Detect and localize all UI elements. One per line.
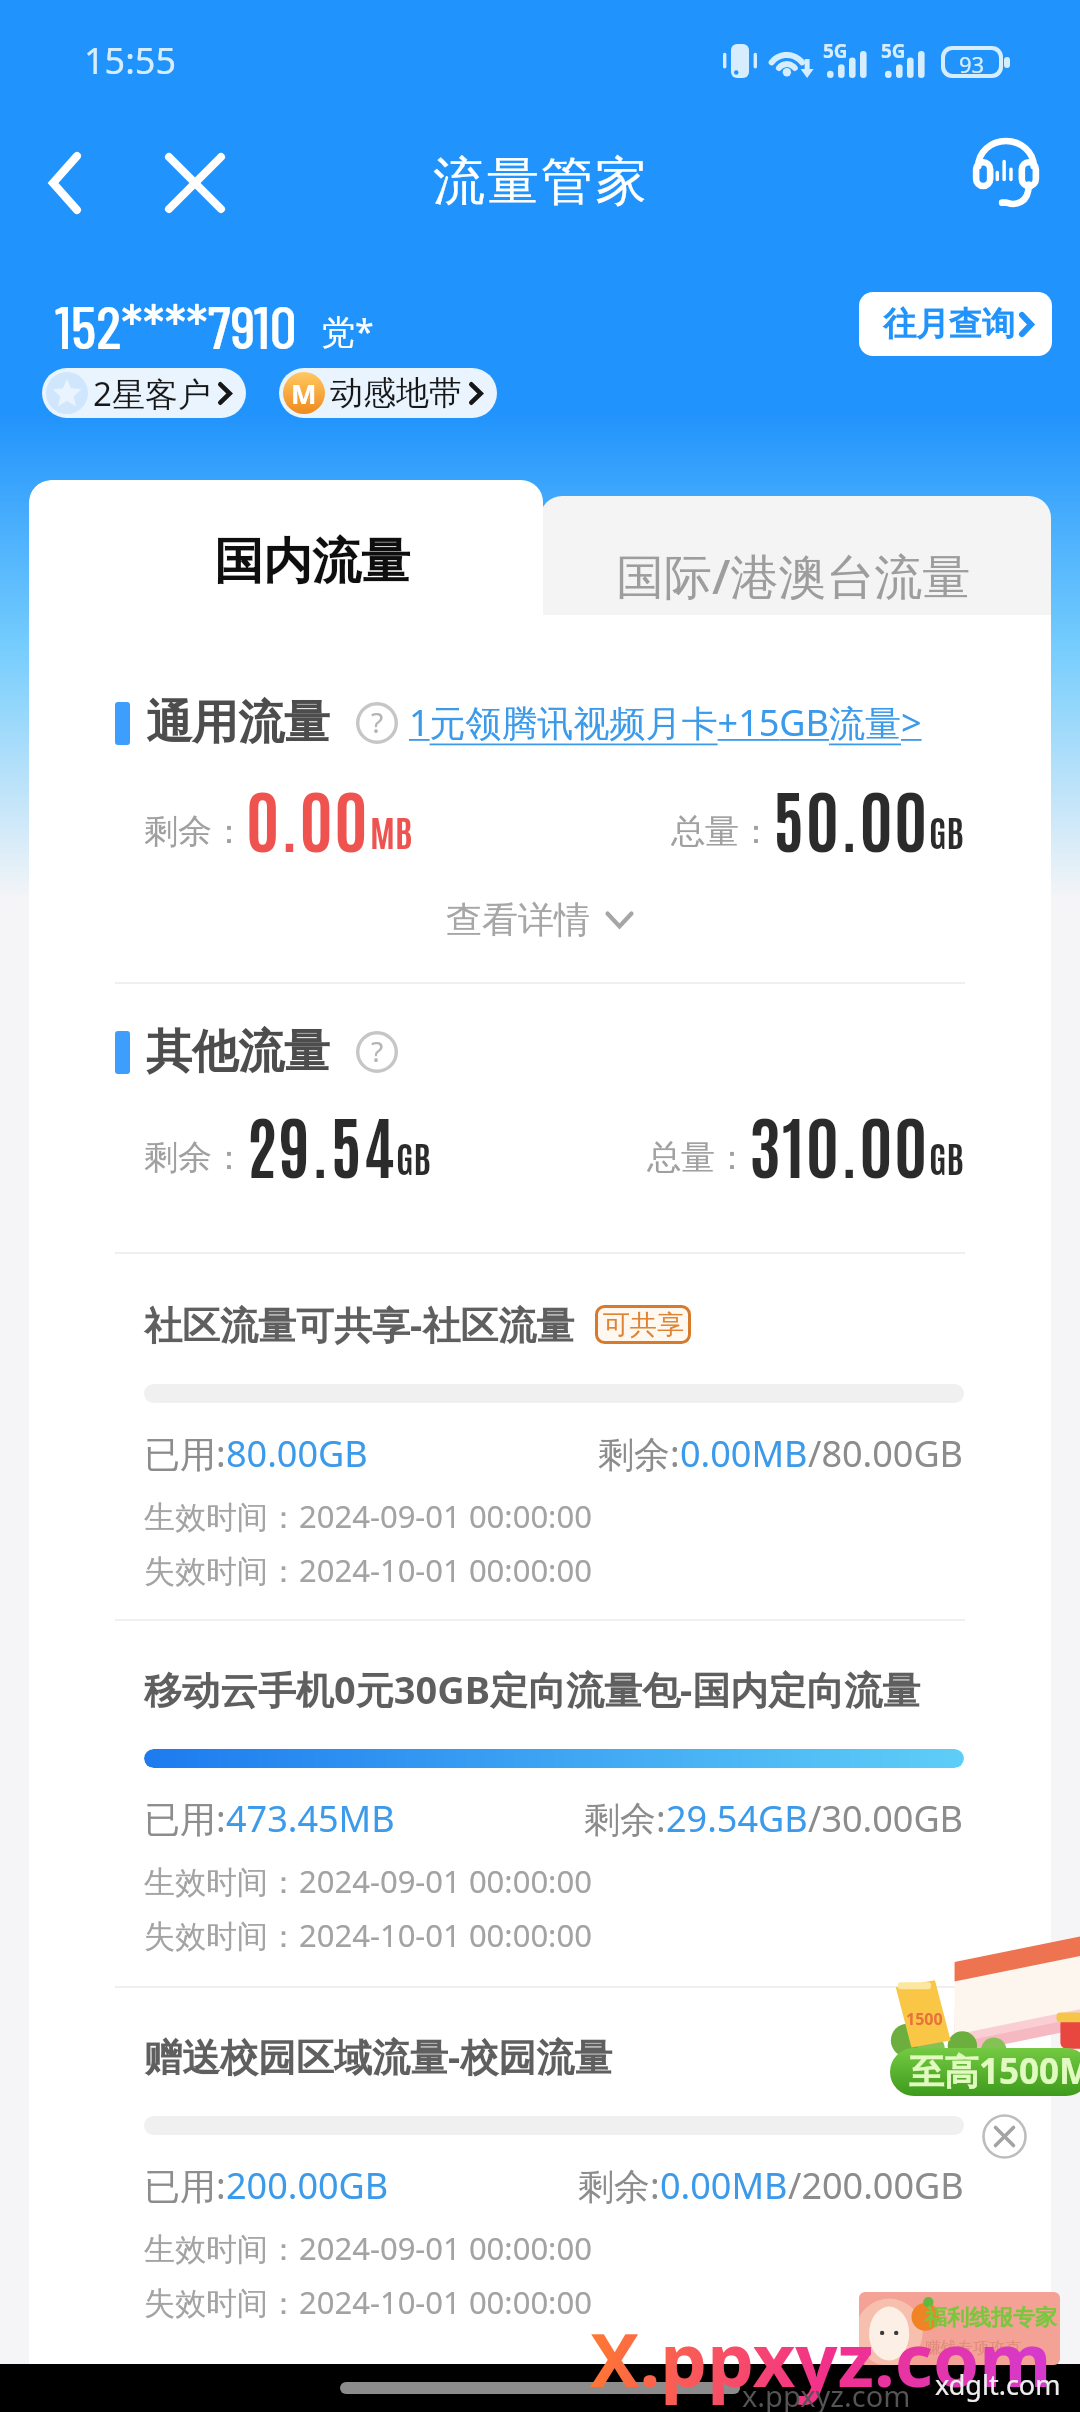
staticText: 通用流量 (146, 694, 330, 752)
staticText: /30.00GB (808, 1794, 964, 1843)
button[interactable]: 关闭广告 (982, 2114, 1027, 2159)
button[interactable]: 国际/港澳台流量 (540, 496, 1051, 636)
staticText: 已用: (144, 2161, 226, 2210)
staticText: 总量： (647, 1136, 749, 1179)
staticText: 剩余： (144, 1136, 246, 1179)
staticText: 查看详情 (446, 897, 590, 942)
staticText: 5G (881, 38, 906, 64)
staticText: 1500 (906, 2008, 943, 2030)
button[interactable]: 至高1500M (890, 2048, 1080, 2096)
staticText: 失效时间：2024-10-01 00:00:00 (144, 1549, 592, 1591)
staticText: xdglt.com (935, 2366, 1061, 2403)
staticText: /80.00GB (808, 1429, 964, 1478)
button[interactable]: 2星客户 (42, 368, 246, 418)
button[interactable]: 在线客服 (941, 108, 1071, 238)
staticText: 移动云手机0元30GB定向流量包-国内定向流量 (144, 1663, 921, 1715)
button[interactable]: 查看详情 (29, 897, 1051, 942)
staticText: 50.00 (773, 773, 929, 861)
button[interactable]: 说明 (356, 1031, 398, 1073)
staticText: 0.00 (246, 773, 370, 861)
staticText: 93 (959, 50, 985, 73)
staticText: 生效时间：2024-09-01 00:00:00 (144, 1495, 592, 1537)
staticText: 剩余: (584, 1794, 666, 1843)
staticText: GB (396, 1133, 431, 1180)
staticText: 总量： (671, 810, 773, 853)
staticText: 失效时间：2024-10-01 00:00:00 (144, 2281, 592, 2323)
button[interactable]: 返回 (0, 118, 130, 248)
staticText: 其他流量 (146, 1023, 330, 1081)
button[interactable]: 关闭 (130, 118, 260, 248)
staticText: 党* (321, 308, 374, 354)
staticText: 200.00GB (226, 2161, 389, 2210)
staticText: 赚钱专项攻克 (925, 2338, 1021, 2358)
staticText: 可共享 (603, 1308, 684, 1342)
button[interactable]: 1元领腾讯视频月卡+15GB流量> (409, 698, 922, 747)
staticText: 80.00GB (226, 1429, 368, 1478)
staticText: 473.45MB (226, 1794, 395, 1843)
button[interactable]: 往月查询 (859, 292, 1052, 356)
staticText: 失效时间：2024-10-01 00:00:00 (144, 1914, 592, 1956)
button[interactable]: 说明 (356, 702, 398, 744)
staticText: GB (929, 807, 964, 854)
staticText: 社区流量可共享-社区流量 (144, 1298, 575, 1350)
staticText: 310.00 (749, 1099, 929, 1187)
staticText: MB (370, 807, 413, 854)
staticText: 15:55 (84, 36, 177, 85)
staticText: 0.00MB (660, 2161, 788, 2210)
button[interactable]: 国内流量 (29, 480, 543, 615)
staticText: 剩余： (144, 810, 246, 853)
staticText: X.ppxyz.com (590, 2308, 1052, 2409)
staticText: 5G (823, 38, 848, 64)
staticText: 2星客户 (93, 371, 211, 416)
button[interactable]: 1500 (884, 1920, 1080, 2060)
button[interactable]: M (279, 368, 497, 418)
staticText: 已用: (144, 1429, 226, 1478)
staticText: 国内流量 (214, 531, 410, 593)
staticText: ? (371, 1032, 384, 1070)
staticText: 剩余: (598, 1429, 680, 1478)
staticText: 152****7910 (55, 289, 297, 361)
staticText: /200.00GB (788, 2161, 964, 2210)
staticText: 动感地带 (330, 372, 462, 414)
staticText: 29.54 (246, 1099, 396, 1187)
staticText: 至高1500M (909, 2048, 1080, 2095)
staticText: 流量管家 (432, 149, 648, 215)
staticText: 生效时间：2024-09-01 00:00:00 (144, 2227, 592, 2269)
staticText: ? (371, 703, 384, 741)
staticText: 已用: (144, 1794, 226, 1843)
staticText: 往月查询 (883, 303, 1015, 345)
staticText: x.ppxyz.com (742, 2376, 911, 2412)
staticText: 剩余: (578, 2161, 660, 2210)
staticText: M (291, 375, 317, 412)
staticText: 福利线报专家 (925, 2304, 1057, 2332)
staticText: GB (929, 1133, 964, 1180)
staticText: 赠送校园区域流量-校园流量 (144, 2030, 613, 2082)
staticText: 国际/港澳台流量 (616, 543, 971, 609)
staticText: 生效时间：2024-09-01 00:00:00 (144, 1860, 592, 1902)
staticText: 29.54GB (666, 1794, 808, 1843)
staticText: 0.00MB (680, 1429, 808, 1478)
